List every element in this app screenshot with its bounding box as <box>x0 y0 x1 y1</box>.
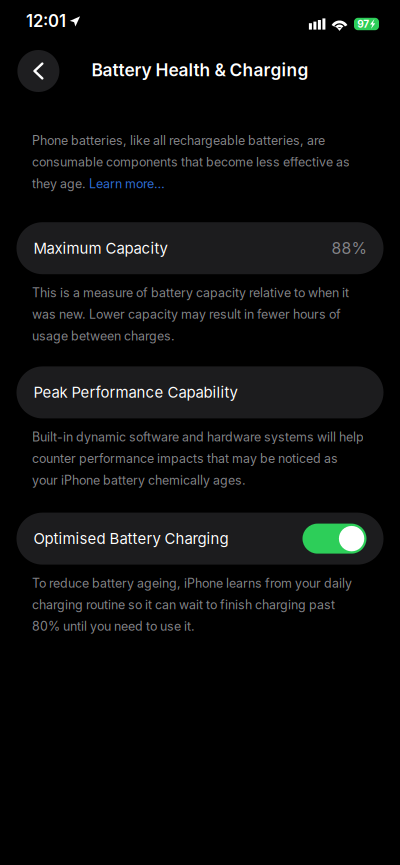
staticText: Optimised Battery Charging <box>33 530 228 548</box>
staticText: charging routine so it can wait to finis… <box>32 597 335 612</box>
staticText: counter performance impacts that may be … <box>32 451 338 466</box>
button[interactable]: Back <box>17 50 59 92</box>
staticText: Learn more… <box>89 176 165 191</box>
staticText: consumable components that become less e… <box>32 155 350 170</box>
staticText: Battery Health & Charging <box>91 59 308 80</box>
button[interactable]: Learn more… <box>89 176 165 191</box>
button[interactable]: Optimised Battery Charging <box>16 513 383 565</box>
staticText: This is a measure of battery capacity re… <box>32 285 349 300</box>
staticText: Built-in dynamic software and hardware s… <box>32 429 364 444</box>
staticText: Peak Performance Capability <box>33 383 237 401</box>
staticText: Maximum Capacity <box>33 239 167 257</box>
staticText: Phone batteries, like all rechargeable b… <box>32 133 325 148</box>
staticText: usage between charges. <box>32 328 175 343</box>
button[interactable]: Peak Performance Capability <box>16 366 383 418</box>
staticText: 88% <box>331 239 366 258</box>
staticText: 97 <box>357 18 369 30</box>
staticText: 12:01 <box>26 11 66 31</box>
staticText: To reduce battery ageing, iPhone learns … <box>32 576 352 591</box>
button[interactable]: Maximum Capacity <box>16 222 383 274</box>
staticText: was new. Lower capacity may result in fe… <box>32 307 341 322</box>
staticText: your iPhone battery chemically ages. <box>32 473 246 488</box>
staticText: 80% until you need to use it. <box>32 619 195 634</box>
staticText: they age. <box>32 176 89 191</box>
